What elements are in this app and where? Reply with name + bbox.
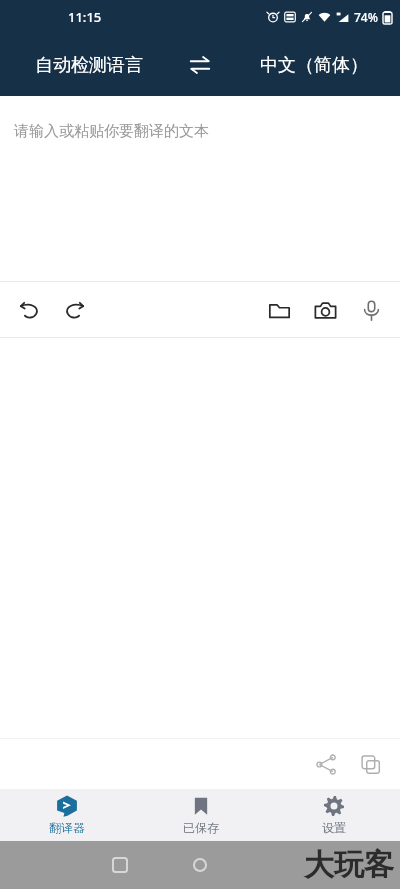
staticText: 已保存 [183,820,219,835]
button[interactable]: Recents [101,846,139,884]
staticText: 74% [354,9,378,25]
button[interactable]: Copy [348,742,392,786]
staticText: 翻译器 [49,820,85,835]
button[interactable]: 自动检测语言 [0,34,173,96]
staticText: 自动检测语言 [35,54,143,77]
button[interactable]: Share [304,742,348,786]
staticText: 设置 [322,820,346,835]
button[interactable]: Redo [52,287,98,333]
button[interactable]: 已保存 [134,789,267,841]
button[interactable]: Swap languages [173,38,227,92]
button[interactable]: 中文（简体） [227,34,400,96]
button[interactable]: 翻译器 [0,789,134,841]
button[interactable]: 设置 [267,789,400,841]
staticText: 11:15 [68,8,102,26]
button[interactable]: Voice input [348,287,394,333]
button[interactable]: Home [181,846,219,884]
staticText: 中文（简体） [260,54,368,77]
button[interactable]: Open file [256,287,302,333]
button[interactable]: Camera [302,287,348,333]
staticText: 大玩客 [304,846,394,884]
button[interactable]: 请输入或粘贴你要翻译的文本 [0,96,400,281]
button[interactable]: Undo [6,287,52,333]
staticText: 请输入或粘贴你要翻译的文本 [14,122,209,141]
